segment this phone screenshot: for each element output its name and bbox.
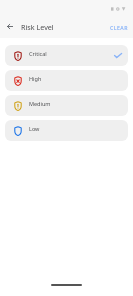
button[interactable]: High [5,70,128,91]
button[interactable]: Critical [5,45,128,66]
staticText: Medium [29,100,51,107]
staticText: CLEAR [110,24,128,31]
button[interactable]: Low [5,120,128,141]
button[interactable]: Back [1,17,19,35]
staticText: High [29,75,42,82]
staticText: Critical [29,50,47,57]
button[interactable]: Medium [5,95,128,116]
staticText: Low [29,125,40,132]
button[interactable]: CLEAR [102,19,133,36]
staticText: Risk Level [21,22,54,32]
